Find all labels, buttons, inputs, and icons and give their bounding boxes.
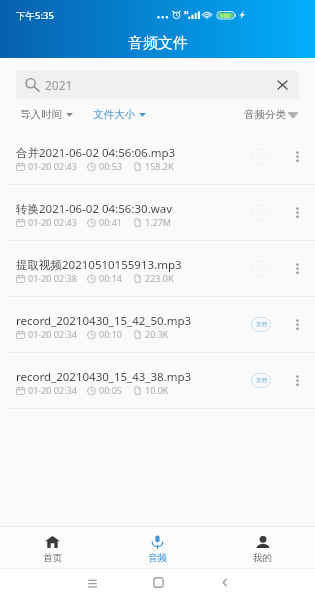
button[interactable]: More options	[287, 137, 308, 177]
button[interactable]: 导入时间	[20, 108, 73, 121]
staticText: 1.27M	[145, 216, 172, 228]
staticText: 223.0K	[145, 272, 174, 284]
staticText: 01-20 02:34	[28, 328, 77, 340]
button[interactable]: 转换2021-06-02 04:56:30.wav	[0, 185, 315, 241]
staticText: 00:10	[99, 328, 123, 340]
staticText: 音频分类	[244, 108, 286, 121]
staticText: 下午5:35	[16, 9, 54, 22]
button[interactable]: 音频分类	[244, 108, 298, 121]
staticText: 00:05	[99, 384, 123, 396]
staticText: 100	[220, 12, 231, 20]
button[interactable]: More options	[287, 193, 308, 233]
button[interactable]: record_20210430_15_42_50.mp3	[0, 297, 315, 353]
button[interactable]: record_20210430_15_43_38.mp3	[0, 353, 315, 409]
button[interactable]: Clear search	[274, 77, 290, 93]
button[interactable]: 合并2021-06-02 04:56:06.mp3	[0, 129, 315, 185]
button[interactable]: 提取视频20210510155913.mp3	[0, 241, 315, 297]
staticText: 音频文件	[128, 34, 188, 53]
button[interactable]: Back	[211, 570, 235, 594]
button[interactable]: 2021	[16, 71, 299, 99]
button[interactable]: Home	[146, 570, 170, 594]
staticText: 我的	[253, 552, 272, 564]
staticText: 文件大小	[93, 108, 135, 121]
staticText: 158.2K	[145, 160, 174, 172]
staticText: 00:14	[99, 272, 123, 284]
staticText: 合并2021-06-02 04:56:06.mp3	[16, 145, 176, 161]
staticText: 导入时间	[20, 108, 62, 121]
button[interactable]: 我的	[210, 532, 315, 564]
button[interactable]: 音频	[105, 532, 210, 564]
staticText: 文档	[256, 321, 267, 328]
staticText: 20.3K	[145, 328, 169, 340]
staticText: 转换2021-06-02 04:56:30.wav	[16, 201, 173, 217]
staticText: 01-20 02:34	[28, 384, 77, 396]
staticText: record_20210430_15_42_50.mp3	[16, 313, 192, 329]
staticText: 00:41	[99, 216, 123, 228]
staticText: 10.0K	[145, 384, 169, 396]
button[interactable]: 文件大小	[93, 108, 146, 121]
staticText: 文档	[256, 377, 267, 384]
button[interactable]: Recent apps	[80, 570, 104, 594]
staticText: 首页	[43, 552, 62, 564]
staticText: 2021	[45, 77, 73, 93]
button[interactable]: More options	[287, 361, 308, 401]
staticText: record_20210430_15_43_38.mp3	[16, 369, 192, 385]
staticText: 音频	[148, 552, 167, 564]
button[interactable]: 首页	[0, 532, 105, 564]
staticText: 提取视频20210510155913.mp3	[16, 257, 182, 273]
staticText: 01-20 02:38	[28, 272, 77, 284]
button[interactable]: More options	[287, 305, 308, 345]
button[interactable]: More options	[287, 249, 308, 289]
staticText: 01-20 02:43	[28, 216, 77, 228]
staticText: 01-20 02:43	[28, 160, 77, 172]
staticText: 00:53	[99, 160, 123, 172]
